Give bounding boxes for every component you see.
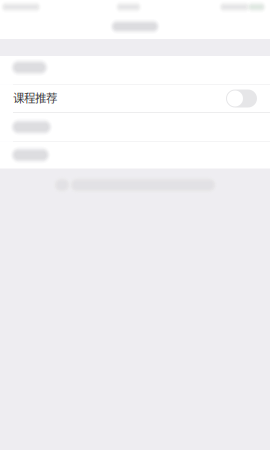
staticText: 课程推荐 [13,89,57,106]
button[interactable]: 设置项 [0,141,270,168]
button[interactable]: 设置项 [0,113,270,141]
button[interactable]: 课程推荐 [226,89,257,107]
button[interactable]: 设置项 [0,56,270,84]
